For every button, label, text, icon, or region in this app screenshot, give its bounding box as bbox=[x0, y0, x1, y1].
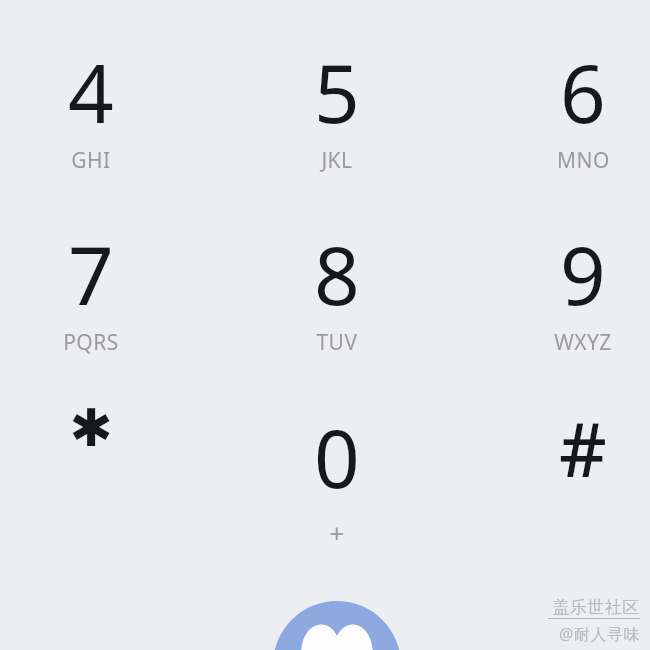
button[interactable]: 9 bbox=[508, 219, 650, 357]
button[interactable]: Pound bbox=[508, 398, 650, 499]
staticText: 8 bbox=[314, 219, 360, 328]
staticText: JKL bbox=[321, 146, 353, 175]
staticText: 6 bbox=[560, 37, 606, 146]
staticText: MNO bbox=[557, 146, 610, 175]
staticText: ✱ bbox=[69, 398, 113, 459]
staticText: 盖乐世社区 bbox=[552, 597, 640, 618]
staticText: 5 bbox=[314, 37, 360, 146]
staticText: @耐人寻味 bbox=[559, 623, 640, 645]
button[interactable]: Star bbox=[16, 398, 166, 459]
staticText: 9 bbox=[560, 219, 606, 328]
staticText: 4 bbox=[68, 37, 114, 146]
button[interactable]: 6 bbox=[508, 37, 650, 175]
button[interactable]: 7 bbox=[16, 219, 166, 357]
staticText: 0 bbox=[314, 402, 360, 511]
staticText: GHI bbox=[71, 146, 111, 175]
staticText: 7 bbox=[68, 219, 114, 328]
staticText: WXYZ bbox=[554, 328, 612, 357]
button[interactable]: 8 bbox=[262, 219, 412, 357]
button[interactable]: 0 bbox=[262, 402, 412, 550]
staticText: # bbox=[559, 398, 607, 499]
staticText: PQRS bbox=[63, 328, 119, 357]
staticText: TUV bbox=[316, 328, 358, 357]
button[interactable]: 4 bbox=[16, 37, 166, 175]
button[interactable]: 5 bbox=[262, 37, 412, 175]
staticText: + bbox=[329, 515, 345, 550]
button[interactable]: Call bbox=[273, 601, 401, 650]
